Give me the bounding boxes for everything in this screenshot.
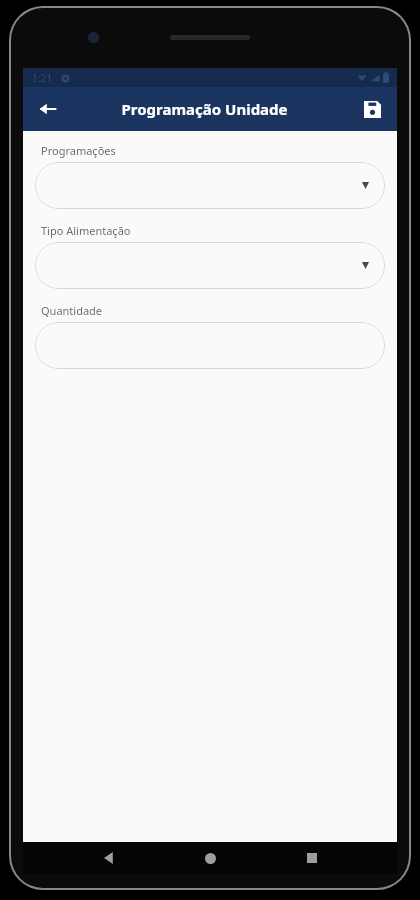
staticText: Quantidade: [41, 303, 103, 318]
button[interactable]: Programações: [35, 162, 385, 209]
button[interactable]: Back: [28, 89, 68, 129]
button[interactable]: Recent apps: [296, 842, 328, 874]
staticText: Programação Unidade: [121, 99, 288, 119]
staticText: 1:21: [32, 71, 52, 85]
button[interactable]: Home: [194, 842, 226, 874]
button[interactable]: Back: [93, 842, 125, 874]
staticText: Tipo Alimentação: [41, 223, 131, 238]
staticText: Programações: [41, 143, 116, 158]
button[interactable]: Save: [353, 90, 391, 128]
button[interactable]: Quantidade: [35, 322, 385, 369]
button[interactable]: Tipo Alimentação: [35, 242, 385, 289]
